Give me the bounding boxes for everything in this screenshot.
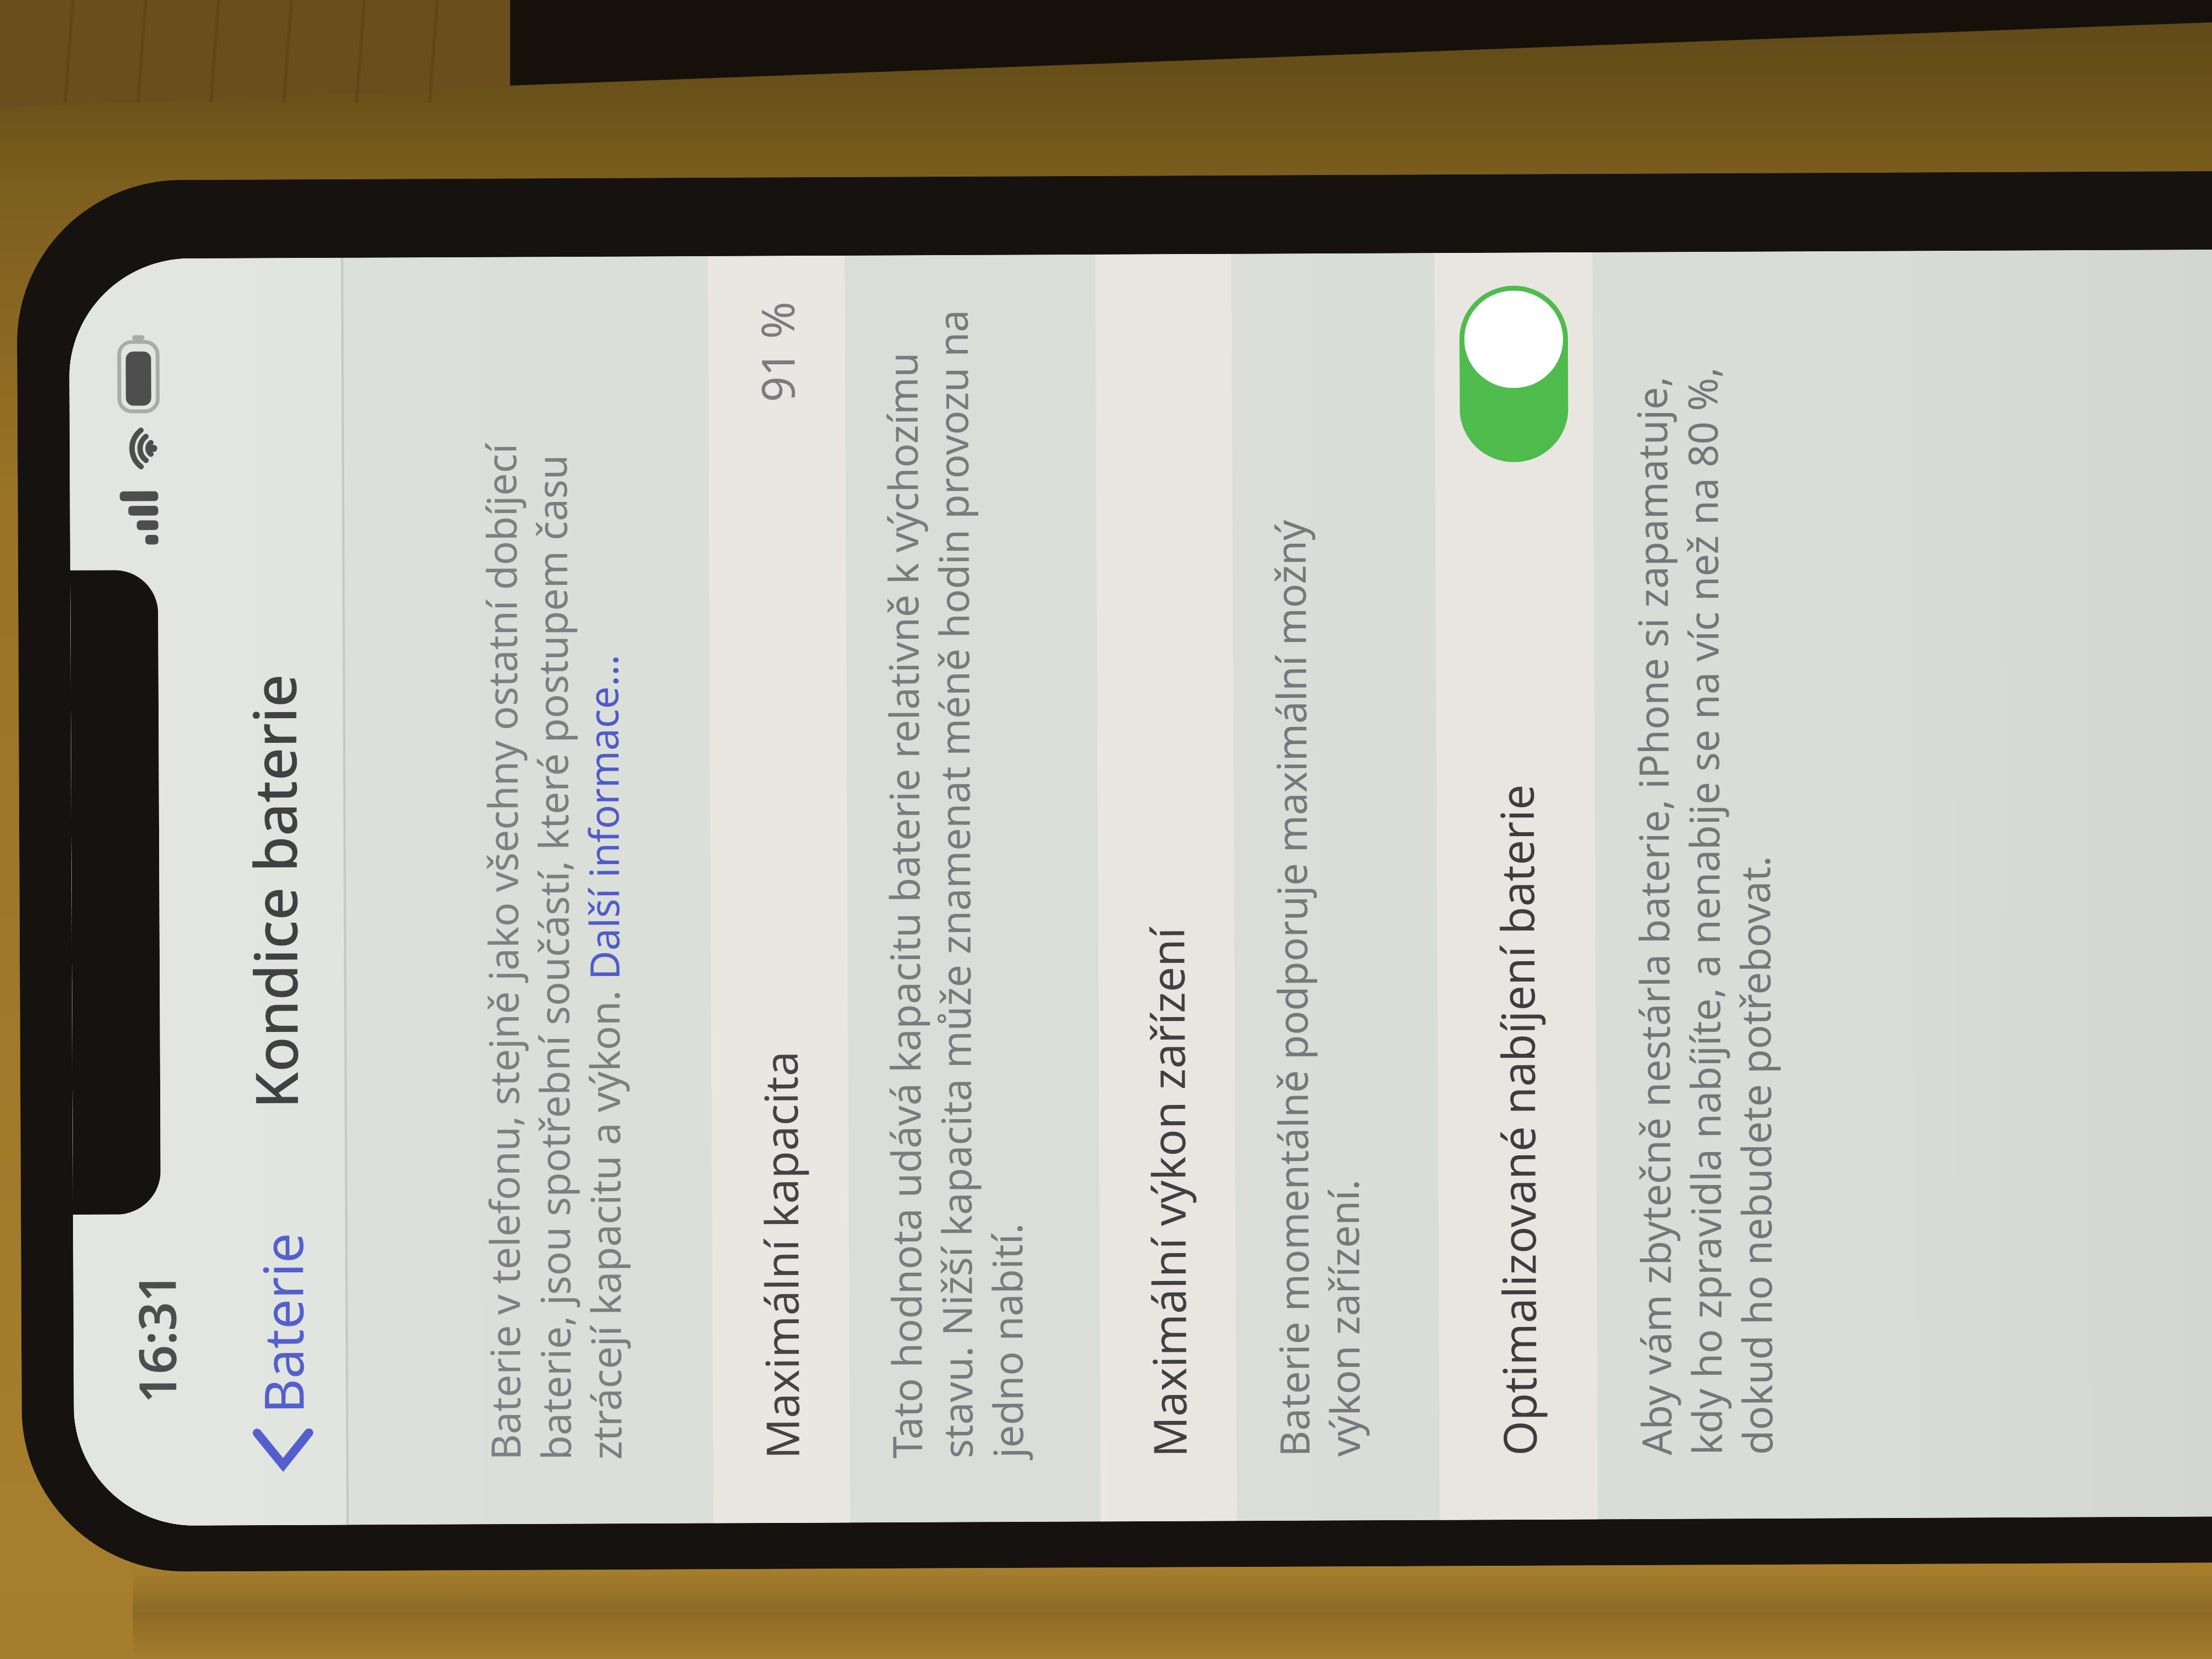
staticText: Maximální výkon zařízení [1136,927,1200,1457]
button[interactable]: Optimalizované nabíjení baterie [1434,252,1598,1520]
staticText: Baterie momentálně podporuje maximální m… [1262,519,1372,1457]
staticText: Baterie v telefonu, stejně jako všechny … [473,443,634,1460]
staticText: Baterie [245,1233,320,1414]
staticText: Kondice baterie [234,674,316,1109]
staticText: Tato hodnota udává kapacitu baterie rela… [874,309,1035,1459]
button[interactable]: Další informace [575,659,629,984]
staticText: Aby vám zbytečně nestárla baterie, iPhon… [1624,366,1785,1455]
button[interactable]: Baterie [238,1225,326,1479]
staticText: Maximální kapacita [749,1051,812,1459]
button[interactable]: Maximální výkon zařízení [1095,254,1237,1522]
staticText: 91 % [745,301,808,402]
staticText: 16:31 [121,1272,192,1403]
staticText: Optimalizované nabíjení baterie [1485,784,1550,1456]
button[interactable]: Optimalizované nabíjení baterie, zapnuto [1459,285,1569,462]
button[interactable]: Maximální kapacita [708,256,850,1523]
